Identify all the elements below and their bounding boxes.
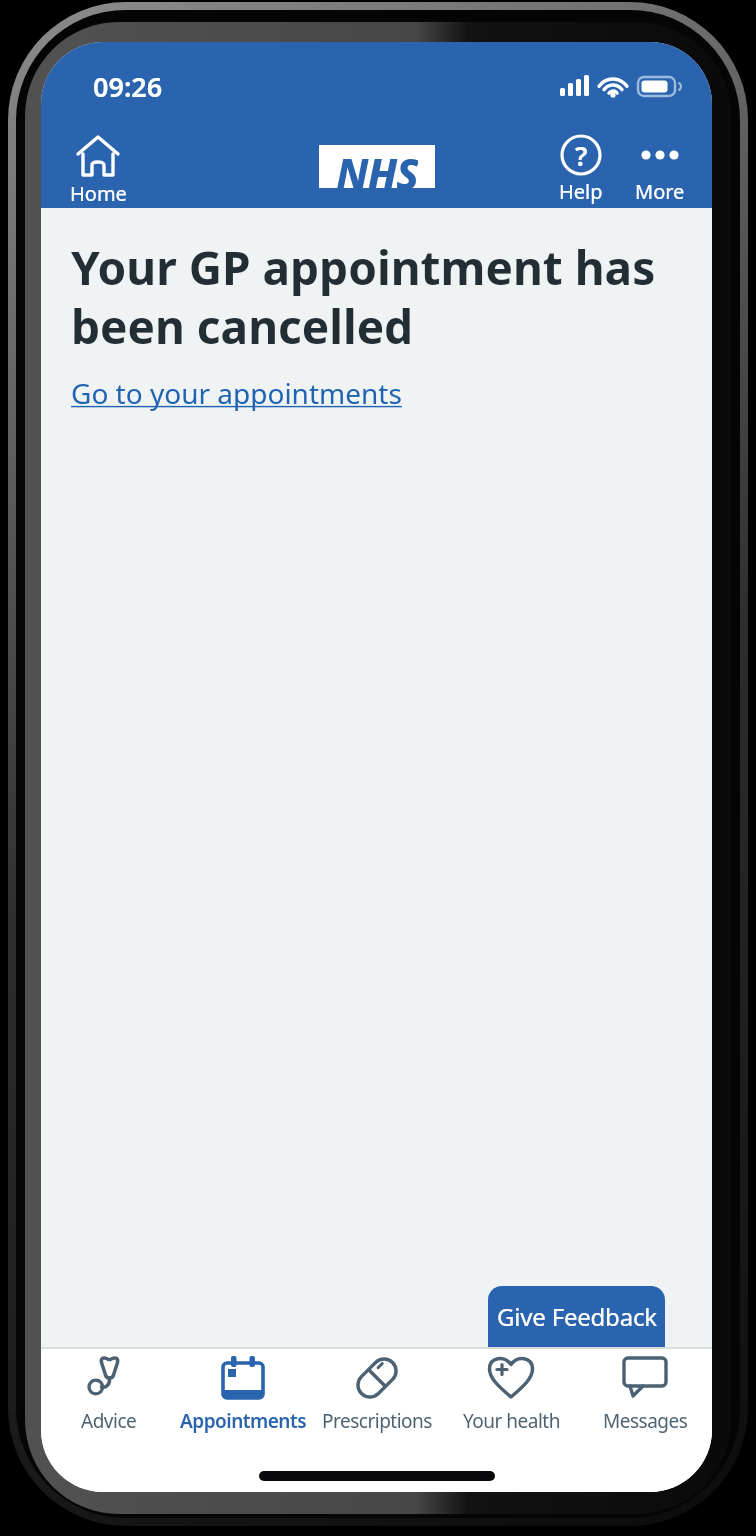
staticText: NHS (336, 145, 418, 188)
staticText: Prescriptions (322, 1408, 432, 1434)
button[interactable]: Appointments (176, 1356, 310, 1434)
button[interactable]: More (628, 134, 692, 205)
staticText: Give Feedback (497, 1300, 657, 1333)
staticText: 09:26 (93, 68, 163, 105)
staticText: Advice (81, 1408, 137, 1434)
staticText: More (635, 178, 685, 205)
staticText: Your GP appointment has been cancelled (71, 236, 656, 357)
button[interactable]: ? (549, 134, 613, 205)
button[interactable]: Home (65, 134, 131, 207)
staticText: ? (575, 137, 588, 174)
staticText: Messages (603, 1408, 688, 1434)
staticText: Your health (463, 1408, 560, 1434)
staticText: Home (70, 180, 127, 207)
button[interactable]: Messages (578, 1356, 712, 1434)
button[interactable]: Advice (41, 1356, 176, 1434)
button[interactable]: Your health (444, 1356, 578, 1434)
staticText: Go to your appointments (71, 374, 402, 412)
staticText: Appointments (180, 1408, 307, 1434)
button[interactable]: Prescriptions (310, 1356, 444, 1434)
button[interactable]: Give Feedback (488, 1286, 665, 1347)
button[interactable]: Go to your appointments (71, 374, 402, 412)
staticText: Help (559, 178, 603, 205)
